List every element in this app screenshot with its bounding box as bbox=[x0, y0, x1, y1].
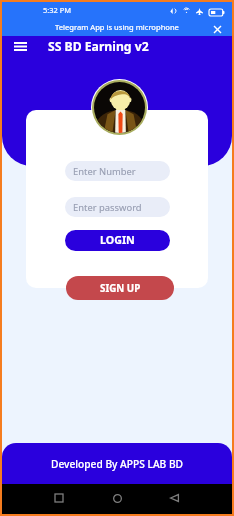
button[interactable]: Recents bbox=[46, 485, 72, 511]
button[interactable]: LOGIN bbox=[65, 230, 170, 251]
staticText: Enter password bbox=[73, 201, 142, 214]
staticText: SIGN UP bbox=[100, 282, 141, 295]
staticText: Enter Number bbox=[73, 165, 136, 178]
staticText: LOGIN bbox=[100, 233, 135, 248]
button[interactable]: Menu bbox=[11, 37, 30, 56]
staticText: Telegram App is using microphone bbox=[55, 22, 179, 32]
button[interactable]: Enter password bbox=[65, 197, 170, 217]
staticText: Developed By APPS LAB BD bbox=[51, 457, 183, 471]
button[interactable]: SIGN UP bbox=[66, 276, 174, 300]
button[interactable]: Back bbox=[161, 485, 187, 511]
button[interactable]: Enter Number bbox=[65, 161, 170, 181]
button[interactable]: Dismiss notification bbox=[210, 22, 225, 37]
staticText: 5:32 PM bbox=[43, 5, 72, 15]
staticText: SS BD Earning v2 bbox=[48, 38, 149, 55]
button[interactable]: Home bbox=[104, 485, 130, 511]
